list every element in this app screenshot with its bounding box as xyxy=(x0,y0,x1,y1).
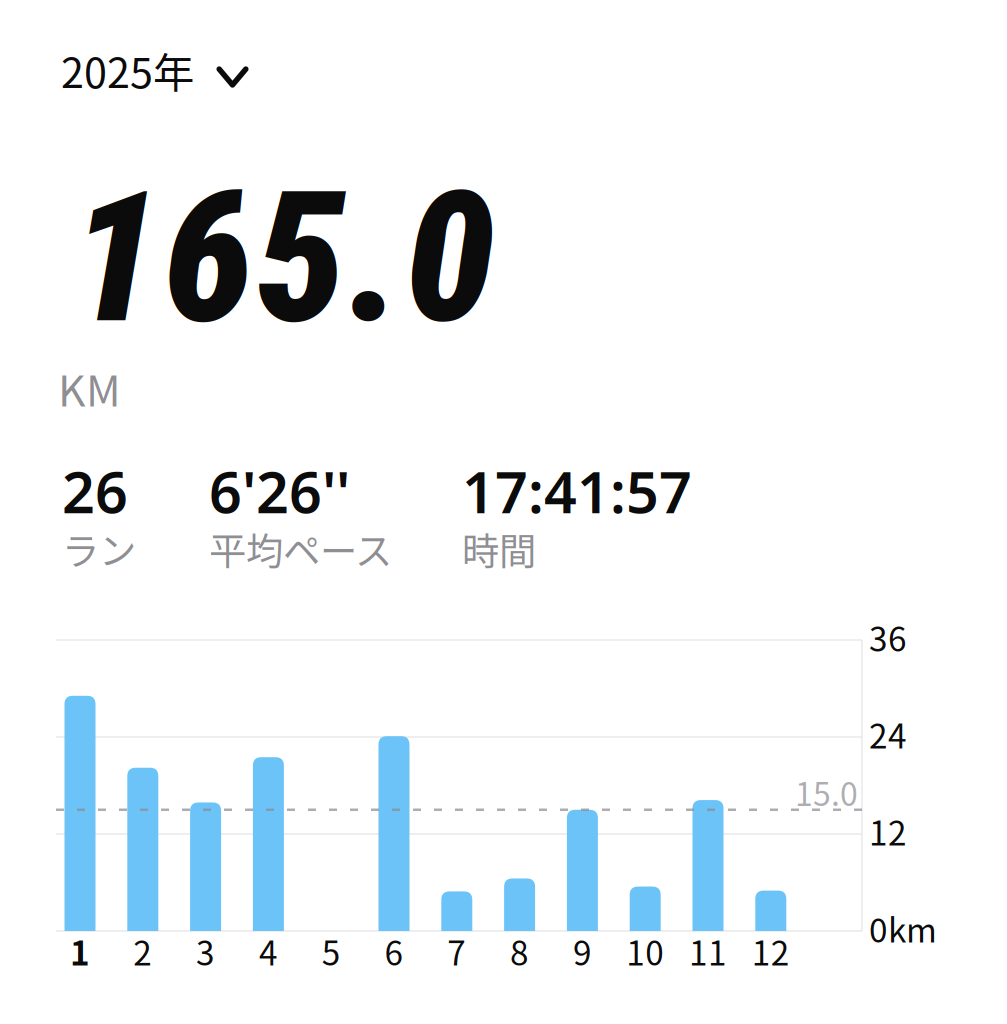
staticText: 2 xyxy=(133,927,152,975)
button[interactable]: 1 xyxy=(49,931,111,971)
staticText: 0km xyxy=(869,904,937,952)
button[interactable]: 7 xyxy=(426,931,488,971)
staticText: 9 xyxy=(573,927,592,975)
staticText: 15.0 xyxy=(795,769,858,815)
staticText: 6'26'' xyxy=(209,452,350,530)
button[interactable]: 4 xyxy=(237,931,299,971)
button[interactable]: 10 xyxy=(614,931,676,971)
button[interactable]: 2 xyxy=(112,931,174,971)
staticText: 36 xyxy=(869,613,907,661)
button[interactable]: 2025年 xyxy=(61,34,249,106)
staticText: 1 xyxy=(70,927,90,975)
staticText: 26 xyxy=(62,452,128,530)
staticText: 12 xyxy=(869,807,907,855)
staticText: 3 xyxy=(196,927,215,975)
button[interactable]: 12 xyxy=(740,931,802,971)
staticText: 時間 xyxy=(462,522,536,576)
staticText: 10 xyxy=(626,927,664,975)
staticText: 7 xyxy=(447,927,466,975)
staticText: 2025年 xyxy=(61,40,194,100)
staticText: 11 xyxy=(689,927,727,975)
staticText: 4 xyxy=(259,927,278,975)
staticText: 6 xyxy=(384,927,403,975)
staticText: 8 xyxy=(510,927,529,975)
staticText: 24 xyxy=(869,710,907,758)
button[interactable]: 11 xyxy=(677,931,739,971)
staticText: KM xyxy=(58,357,121,419)
staticText: 12 xyxy=(752,927,790,975)
staticText: ラン xyxy=(62,522,136,576)
staticText: 5 xyxy=(322,927,341,975)
button[interactable]: 8 xyxy=(489,931,551,971)
staticText: 165.0 xyxy=(70,152,495,364)
button[interactable]: 9 xyxy=(551,931,613,971)
button[interactable]: 3 xyxy=(175,931,237,971)
button[interactable]: 5 xyxy=(300,931,362,971)
staticText: 平均ペース xyxy=(209,522,392,576)
button[interactable]: 6 xyxy=(363,931,425,971)
staticText: 17:41:57 xyxy=(462,452,692,530)
